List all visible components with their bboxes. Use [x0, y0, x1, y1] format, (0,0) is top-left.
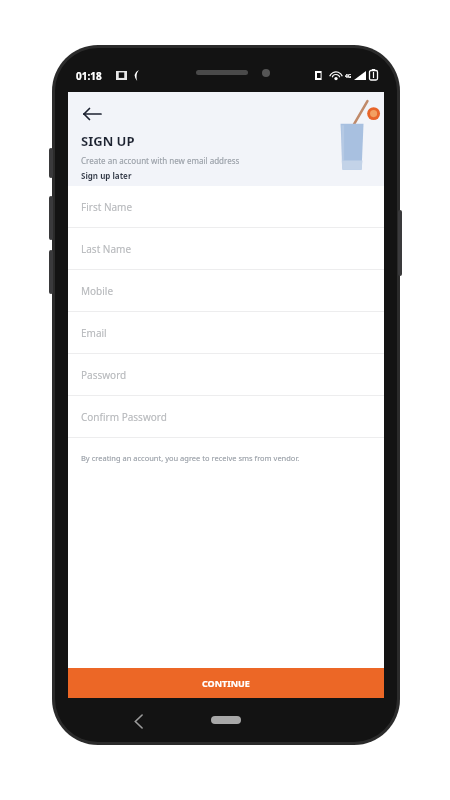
staticText: Confirm Password — [81, 410, 167, 424]
staticText: First Name — [81, 200, 133, 214]
button[interactable]: Last Name — [68, 228, 384, 270]
staticText: CONTINUE — [202, 677, 250, 689]
button[interactable]: CONTINUE — [68, 668, 384, 698]
button[interactable]: Confirm Password — [68, 396, 384, 438]
staticText: Password — [81, 368, 127, 382]
button[interactable]: First Name — [68, 186, 384, 228]
staticText: Last Name — [81, 242, 132, 256]
staticText: Create an account with new email address — [81, 155, 240, 166]
staticText: Sign up later — [81, 170, 132, 181]
button[interactable]: Home — [211, 716, 241, 724]
staticText: SIGN UP — [81, 132, 135, 150]
button[interactable]: Back — [125, 708, 151, 734]
button[interactable]: Password — [68, 354, 384, 396]
staticText: Mobile — [81, 284, 114, 298]
button[interactable]: Email — [68, 312, 384, 354]
button[interactable]: Sign up later — [81, 170, 132, 181]
staticText: Email — [81, 326, 107, 340]
button[interactable]: Mobile — [68, 270, 384, 312]
button[interactable]: Back — [74, 96, 110, 132]
staticText: 4G — [345, 73, 352, 80]
staticText: By creating an account, you agree to rec… — [81, 453, 300, 463]
staticText: 01:18 — [76, 69, 102, 83]
